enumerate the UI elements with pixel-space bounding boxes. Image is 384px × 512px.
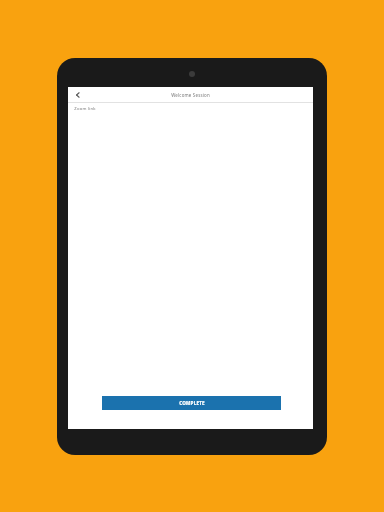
button[interactable]: Zoom link [74,106,96,112]
staticText: COMPLETE [179,400,205,406]
button[interactable]: Back [70,87,86,102]
button[interactable]: COMPLETE [102,396,281,410]
staticText: Welcome Session [171,92,210,98]
